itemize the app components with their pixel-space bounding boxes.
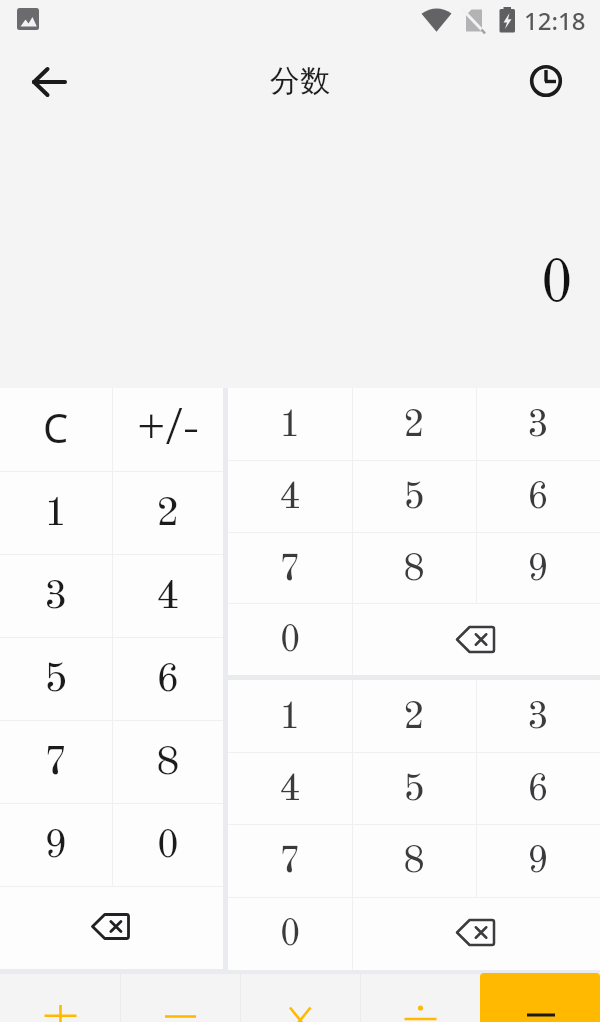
button[interactable]: 7: [0, 720, 112, 803]
button[interactable]: 6: [476, 752, 600, 824]
staticText: 9: [527, 551, 550, 589]
button[interactable]: 8: [112, 720, 223, 803]
button[interactable]: 1: [228, 680, 352, 752]
staticText: 8: [156, 743, 180, 784]
button[interactable]: [240, 974, 360, 1022]
button[interactable]: 5: [352, 752, 476, 824]
staticText: 分数: [270, 62, 330, 100]
staticText: 6: [527, 479, 550, 517]
staticText: 1: [279, 699, 302, 737]
button[interactable]: 0: [228, 603, 352, 675]
button[interactable]: 7: [228, 532, 352, 604]
staticText: 2: [403, 407, 426, 445]
staticText: 4: [156, 577, 180, 618]
staticText: 9: [44, 826, 68, 867]
button[interactable]: 5: [352, 460, 476, 532]
button[interactable]: 3: [0, 554, 112, 637]
staticText: 9: [527, 843, 550, 881]
staticText: 4: [279, 479, 302, 517]
button[interactable]: [480, 973, 600, 1022]
button[interactable]: 7: [228, 824, 352, 896]
button[interactable]: [360, 974, 480, 1022]
staticText: 3: [44, 577, 68, 618]
button[interactable]: [518, 55, 574, 109]
staticText: 0: [157, 826, 178, 867]
staticText: 8: [403, 843, 426, 881]
staticText: +/-: [137, 391, 199, 459]
button[interactable]: 1: [228, 388, 352, 460]
staticText: 0: [280, 916, 301, 954]
staticText: 0: [280, 622, 301, 660]
staticText: 5: [403, 771, 426, 809]
button[interactable]: 4: [228, 752, 352, 824]
button[interactable]: [352, 603, 600, 675]
staticText: 8: [403, 551, 426, 589]
button[interactable]: 4: [228, 460, 352, 532]
staticText: 7: [279, 551, 302, 589]
staticText: 4: [279, 771, 302, 809]
staticText: 7: [44, 743, 68, 784]
button[interactable]: 0: [112, 803, 223, 886]
button[interactable]: +/-: [112, 388, 223, 471]
button[interactable]: 2: [352, 680, 476, 752]
staticText: 5: [44, 660, 68, 701]
button[interactable]: 9: [476, 824, 600, 896]
button[interactable]: [352, 897, 600, 969]
button[interactable]: 9: [476, 532, 600, 604]
button[interactable]: 6: [112, 637, 223, 720]
staticText: 1: [44, 494, 68, 535]
staticText: 3: [527, 407, 550, 445]
button[interactable]: 1: [0, 471, 112, 554]
button[interactable]: 3: [476, 388, 600, 460]
staticText: 5: [403, 479, 426, 517]
staticText: 3: [527, 699, 550, 737]
button[interactable]: 8: [352, 532, 476, 604]
button[interactable]: [120, 974, 240, 1022]
button[interactable]: 6: [476, 460, 600, 532]
staticText: 6: [156, 660, 180, 701]
button[interactable]: C: [0, 388, 112, 471]
staticText: 2: [156, 494, 180, 535]
button[interactable]: [20, 55, 76, 109]
button[interactable]: 2: [112, 471, 223, 554]
button[interactable]: 8: [352, 824, 476, 896]
button[interactable]: 5: [0, 637, 112, 720]
staticText: 6: [527, 771, 550, 809]
staticText: 7: [279, 843, 302, 881]
button[interactable]: 3: [476, 680, 600, 752]
staticText: 0: [542, 254, 572, 316]
button[interactable]: 2: [352, 388, 476, 460]
staticText: 12:18: [524, 4, 586, 37]
staticText: 2: [403, 699, 426, 737]
button[interactable]: [0, 974, 120, 1022]
staticText: 1: [279, 407, 302, 445]
button[interactable]: 4: [112, 554, 223, 637]
button[interactable]: 0: [228, 897, 352, 969]
button[interactable]: 9: [0, 803, 112, 886]
staticText: C: [43, 400, 69, 454]
button[interactable]: [0, 886, 223, 969]
